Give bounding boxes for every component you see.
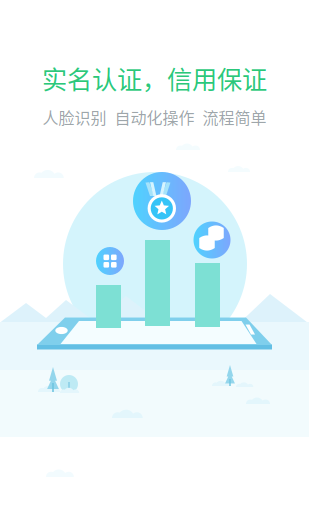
staticText: 实名认证，信用保证 bbox=[42, 60, 267, 96]
staticText: 人脸识别 自动化操作 流程简单 bbox=[42, 105, 266, 129]
